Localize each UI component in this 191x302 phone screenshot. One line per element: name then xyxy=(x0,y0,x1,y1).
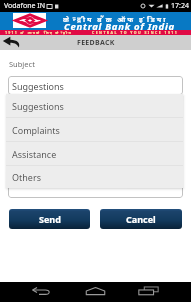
staticText: CENTRAL TO YOU SINCE 1911 xyxy=(92,30,179,35)
button[interactable]: Complaints xyxy=(6,118,183,142)
button[interactable]: Recent apps xyxy=(138,286,159,298)
staticText: Vodafone IN xyxy=(4,1,45,11)
button[interactable]: Assistance xyxy=(6,142,183,166)
staticText: Others xyxy=(12,171,41,183)
staticText: FEEDBACK xyxy=(77,38,115,48)
staticText: Complaints xyxy=(12,124,60,136)
staticText: Central Bank of India xyxy=(64,20,175,33)
button[interactable]: Send xyxy=(9,209,90,229)
staticText: Cancel xyxy=(126,213,156,225)
button[interactable]: Cancel xyxy=(100,209,182,229)
staticText: Subject xyxy=(9,59,35,69)
staticText: Send xyxy=(39,213,61,225)
button[interactable]: Back xyxy=(31,286,51,298)
staticText: केन्द्रीय बैंक ऑफ इंडिया xyxy=(63,15,168,25)
staticText: Assistance xyxy=(12,148,57,160)
staticText: 1911 से आपके लिए केन्द्रीय xyxy=(5,30,73,35)
button[interactable]: Suggestions xyxy=(6,94,183,118)
button[interactable]: Others xyxy=(6,166,183,188)
button[interactable]: Home xyxy=(85,286,106,298)
button[interactable] xyxy=(8,100,183,198)
staticText: Suggestions xyxy=(12,100,64,112)
staticText: Suggestions xyxy=(12,80,64,92)
button[interactable]: Suggestions xyxy=(8,76,183,95)
staticText: 17:24 xyxy=(171,1,189,11)
button[interactable]: Back xyxy=(0,35,22,50)
